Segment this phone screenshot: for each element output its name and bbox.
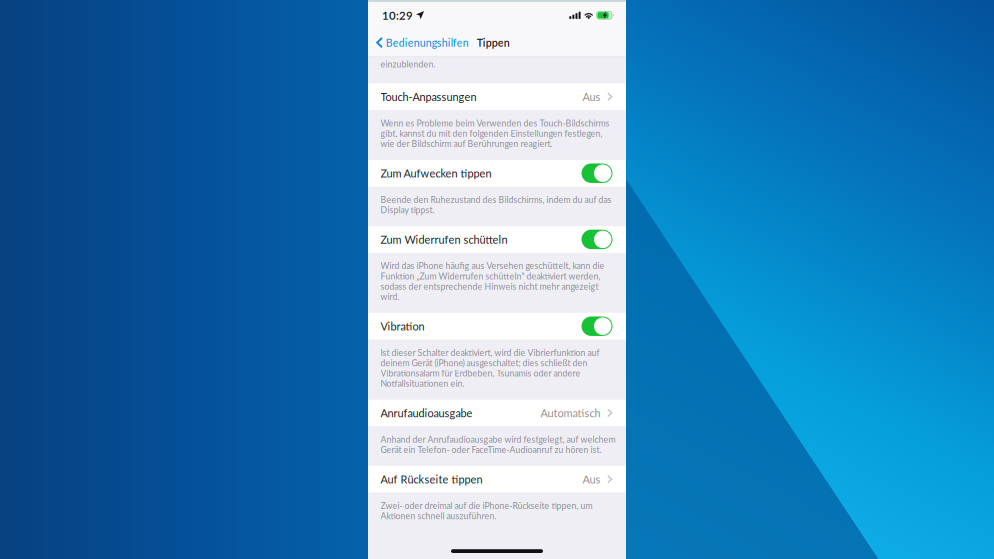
staticText: Gerät ein Telefon- oder FaceTime-Audioan… <box>380 444 601 455</box>
staticText: Notfallsituationen ein. <box>380 378 464 389</box>
staticText: Wenn es Probleme beim Verwenden des Touc… <box>380 118 609 128</box>
button[interactable]: Vibration <box>368 313 626 339</box>
button[interactable]: Auf Rückseite tippen <box>368 466 626 492</box>
button[interactable]: Bedienungshilfen <box>368 28 473 57</box>
staticText: Vibration <box>380 320 424 333</box>
staticText: Aus <box>582 90 600 103</box>
staticText: Display tippst. <box>380 205 434 215</box>
staticText: gibt, kannst du mit den folgenden Einste… <box>380 128 602 138</box>
staticText: deinem Gerät (iPhone) ausgeschaltet; die… <box>380 358 587 368</box>
button[interactable]: Touch-Anpassungen <box>368 83 626 110</box>
staticText: Wird das iPhone häufig aus Versehen gesc… <box>380 260 604 271</box>
staticText: Zwei- oder dreimal auf die iPhone-Rückse… <box>380 500 592 511</box>
staticText: Anhand der Anrufaudioausgabe wird festge… <box>380 434 615 444</box>
staticText: Automatisch <box>540 406 600 419</box>
staticText: wie der Bildschirm auf Berührungen reagi… <box>380 138 552 149</box>
staticText: wird. <box>380 291 399 302</box>
staticText: 10:29 <box>382 8 413 22</box>
button[interactable]: Anrufaudioausgabe <box>368 400 626 426</box>
staticText: Aktionen schnell auszuführen. <box>380 511 496 521</box>
staticText: Zum Aufwecken tippen <box>380 167 491 180</box>
staticText: Zum Widerrufen schütteln <box>380 233 507 246</box>
staticText: Funktion „Zum Widerrufen schütteln“ deak… <box>380 271 600 281</box>
staticText: Bedienungshilfen <box>386 36 469 49</box>
staticText: Ist dieser Schalter deaktiviert, wird di… <box>380 347 599 358</box>
staticText: Anrufaudioausgabe <box>380 406 472 419</box>
button[interactable]: Zum Widerrufen schütteln <box>368 226 626 253</box>
staticText: Vibrationsalarm für Erdbeben, Tsunamis o… <box>380 368 580 378</box>
staticText: sodass der entsprechende Hinweis nicht m… <box>380 281 598 291</box>
staticText: Aus <box>582 473 600 486</box>
staticText: Touch-Anpassungen <box>380 90 476 103</box>
staticText: Auf Rückseite tippen <box>380 473 482 486</box>
staticText: einzublenden. <box>380 59 435 69</box>
button[interactable]: Zum Aufwecken tippen <box>368 160 626 186</box>
staticText: Beende den Ruhezustand des Bildschirms, … <box>380 194 611 205</box>
staticText: Tippen <box>477 36 510 49</box>
